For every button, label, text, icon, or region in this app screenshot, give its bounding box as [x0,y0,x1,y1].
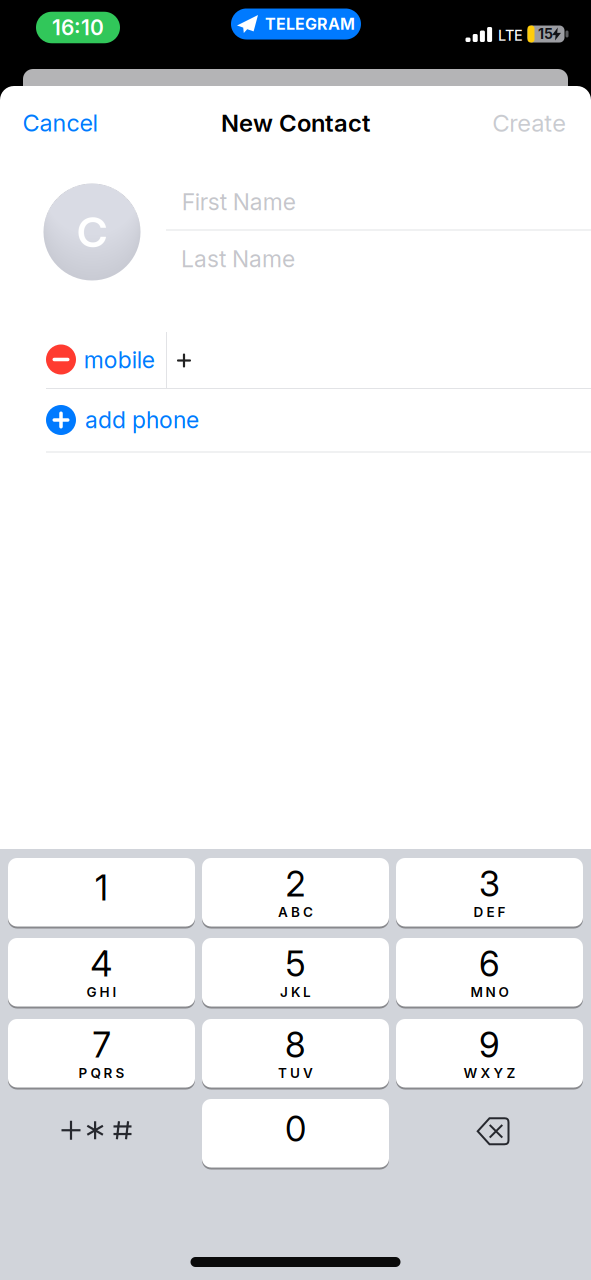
staticText: P Q R S [78,1065,124,1081]
staticText: J K L [280,984,311,1000]
staticText: TELEGRAM [265,14,355,34]
staticText: 9 [479,1024,500,1066]
button[interactable]: 2 [202,858,389,926]
button[interactable]: 0 [202,1099,389,1167]
staticText: 5 [285,943,305,985]
button[interactable]: add phone [0,0,591,1280]
button[interactable]: Last Name [181,245,295,273]
button[interactable]: Create [492,108,566,137]
staticText: 15 [538,25,553,42]
button[interactable]: Symbols [59,1105,134,1155]
staticText: LTE [498,27,523,44]
staticText: 2 [285,863,305,905]
staticText: 3 [479,863,500,905]
button[interactable]: 8 [202,1019,389,1087]
button[interactable]: 3 [396,858,583,926]
staticText: D E F [473,904,505,920]
button[interactable]: 7 [8,1019,195,1087]
button[interactable]: Delete [477,1118,509,1145]
staticText: 6 [479,943,500,985]
button[interactable]: Phone number [164,340,204,380]
staticText: M N O [470,984,508,1000]
button[interactable]: Remove phone [40,338,82,380]
button[interactable]: 1 [8,858,195,926]
staticText: 8 [285,1024,306,1066]
staticText: Create [492,108,566,137]
button[interactable]: Return to Telegram [231,8,361,39]
staticText: G H I [86,984,116,1000]
button[interactable]: 4 [8,938,195,1006]
staticText: 1 [95,867,108,909]
staticText: W X Y Z [463,1065,515,1081]
staticText: 7 [92,1024,110,1066]
staticText: C [77,207,107,257]
staticText: New Contact [221,108,370,137]
button[interactable]: 5 [202,938,389,1006]
button[interactable]: 9 [396,1019,583,1087]
staticText: 0 [285,1108,306,1150]
staticText: T U V [278,1065,313,1081]
staticText: 4 [90,943,112,985]
staticText: 16:10 [52,15,104,40]
staticText: add phone [85,406,199,434]
staticText: mobile [84,346,155,374]
staticText: A B C [278,904,313,920]
button[interactable]: Cancel [22,109,98,137]
staticText: First Name [182,188,296,216]
staticText: Last Name [181,245,295,273]
button[interactable]: mobile [84,346,155,374]
button[interactable]: 6 [396,938,583,1006]
button[interactable]: First Name [182,188,296,216]
staticText: Cancel [22,109,98,137]
